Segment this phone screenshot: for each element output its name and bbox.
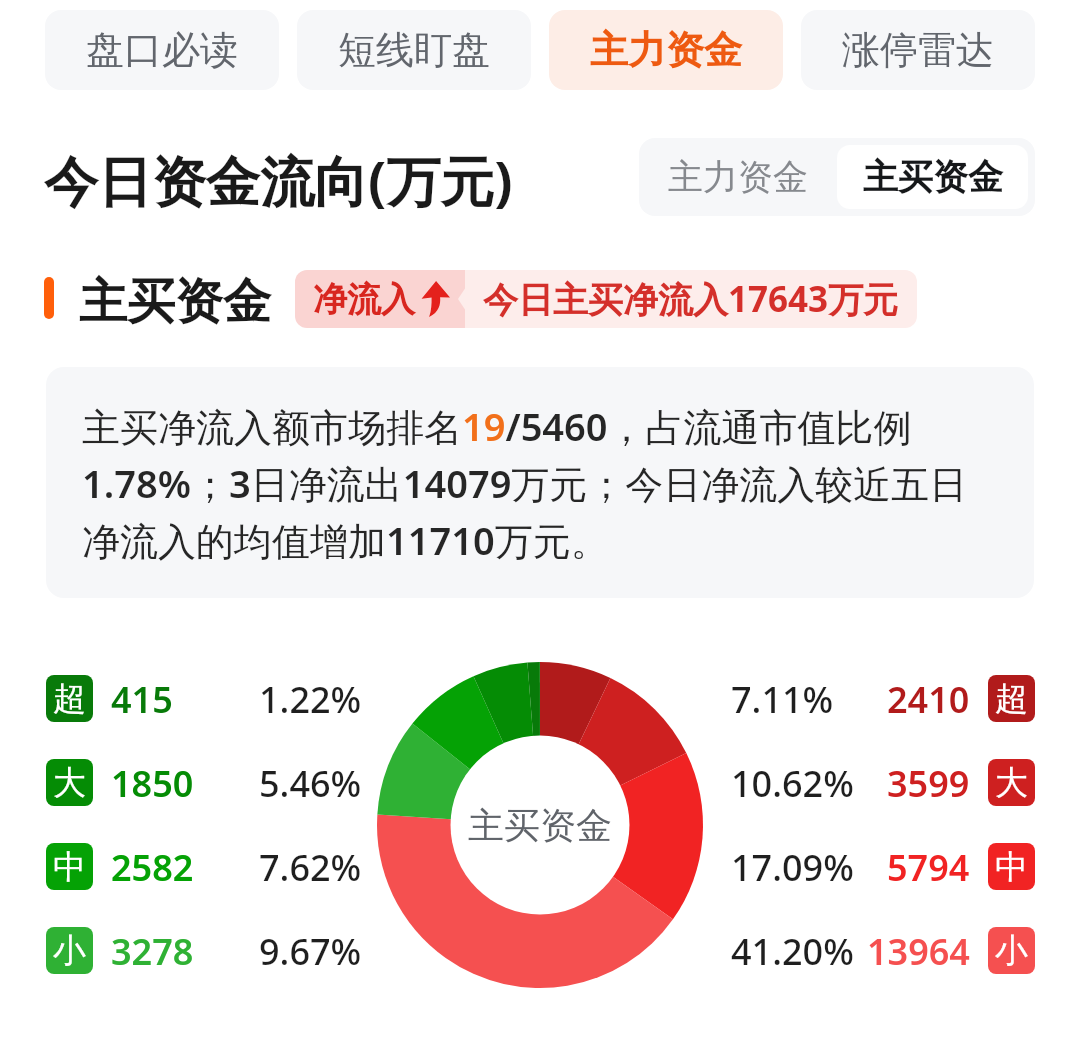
button[interactable]: 中 bbox=[46, 843, 366, 890]
staticText: 净流入 bbox=[313, 278, 415, 321]
staticText: 超 bbox=[53, 678, 86, 720]
staticText: 3599 bbox=[887, 759, 970, 806]
staticText: 今日主买净流入17643万元 bbox=[483, 275, 899, 323]
staticText: 5794 bbox=[887, 843, 970, 890]
staticText: 主买资金 bbox=[468, 803, 612, 848]
button[interactable]: 17.09% bbox=[731, 843, 1035, 890]
button[interactable]: 盘口必读 bbox=[45, 10, 279, 90]
staticText: 13964 bbox=[867, 927, 970, 974]
staticText: 10.62% bbox=[731, 759, 854, 806]
staticText: 7.62% bbox=[259, 843, 362, 890]
button[interactable]: 41.20% bbox=[731, 927, 1035, 974]
button[interactable]: 涨停雷达 bbox=[801, 10, 1035, 90]
staticText: 主力资金 bbox=[668, 155, 808, 199]
staticText: 中 bbox=[53, 846, 86, 888]
staticText: 415 bbox=[111, 675, 173, 722]
staticText: 17.09% bbox=[731, 843, 854, 890]
button[interactable]: 主力资金 bbox=[549, 10, 783, 90]
staticText: 2582 bbox=[111, 843, 194, 890]
staticText: 盘口必读 bbox=[86, 26, 238, 74]
staticText: 超 bbox=[995, 678, 1028, 720]
staticText: 5.46% bbox=[259, 759, 362, 806]
button[interactable]: 主买资金 bbox=[837, 145, 1028, 209]
staticText: 小 bbox=[995, 930, 1028, 972]
staticText: 主力资金 bbox=[590, 26, 742, 74]
button[interactable]: 短线盯盘 bbox=[297, 10, 531, 90]
staticText: 1.22% bbox=[259, 675, 362, 722]
staticText: 今日资金流向(万元) bbox=[44, 143, 513, 217]
button[interactable]: 小 bbox=[46, 927, 366, 974]
staticText: 主买资金 bbox=[863, 155, 1003, 199]
staticText: 3278 bbox=[111, 927, 194, 974]
button[interactable]: 大 bbox=[46, 759, 366, 806]
staticText: 7.11% bbox=[731, 675, 834, 722]
staticText: 短线盯盘 bbox=[338, 26, 490, 74]
staticText: 大 bbox=[995, 762, 1028, 804]
staticText: 大 bbox=[53, 762, 86, 804]
staticText: 主买资金 bbox=[79, 272, 271, 332]
staticText: 主买净流入额市场排名19/5460，占流通市值比例1.78%；3日净流出1407… bbox=[82, 400, 987, 566]
button[interactable]: 超 bbox=[46, 675, 366, 722]
button[interactable]: 7.11% bbox=[731, 675, 1035, 722]
staticText: 1850 bbox=[111, 759, 194, 806]
staticText: 涨停雷达 bbox=[842, 26, 994, 74]
staticText: 9.67% bbox=[259, 927, 362, 974]
button[interactable]: 主力资金 bbox=[639, 138, 837, 216]
staticText: 小 bbox=[53, 930, 86, 972]
staticText: 2410 bbox=[887, 675, 970, 722]
button[interactable]: 主买资金占比环形图 bbox=[377, 662, 703, 988]
staticText: 中 bbox=[995, 846, 1028, 888]
button[interactable]: 10.62% bbox=[731, 759, 1035, 806]
staticText: 41.20% bbox=[731, 927, 854, 974]
button[interactable]: 净流入 bbox=[295, 270, 917, 328]
